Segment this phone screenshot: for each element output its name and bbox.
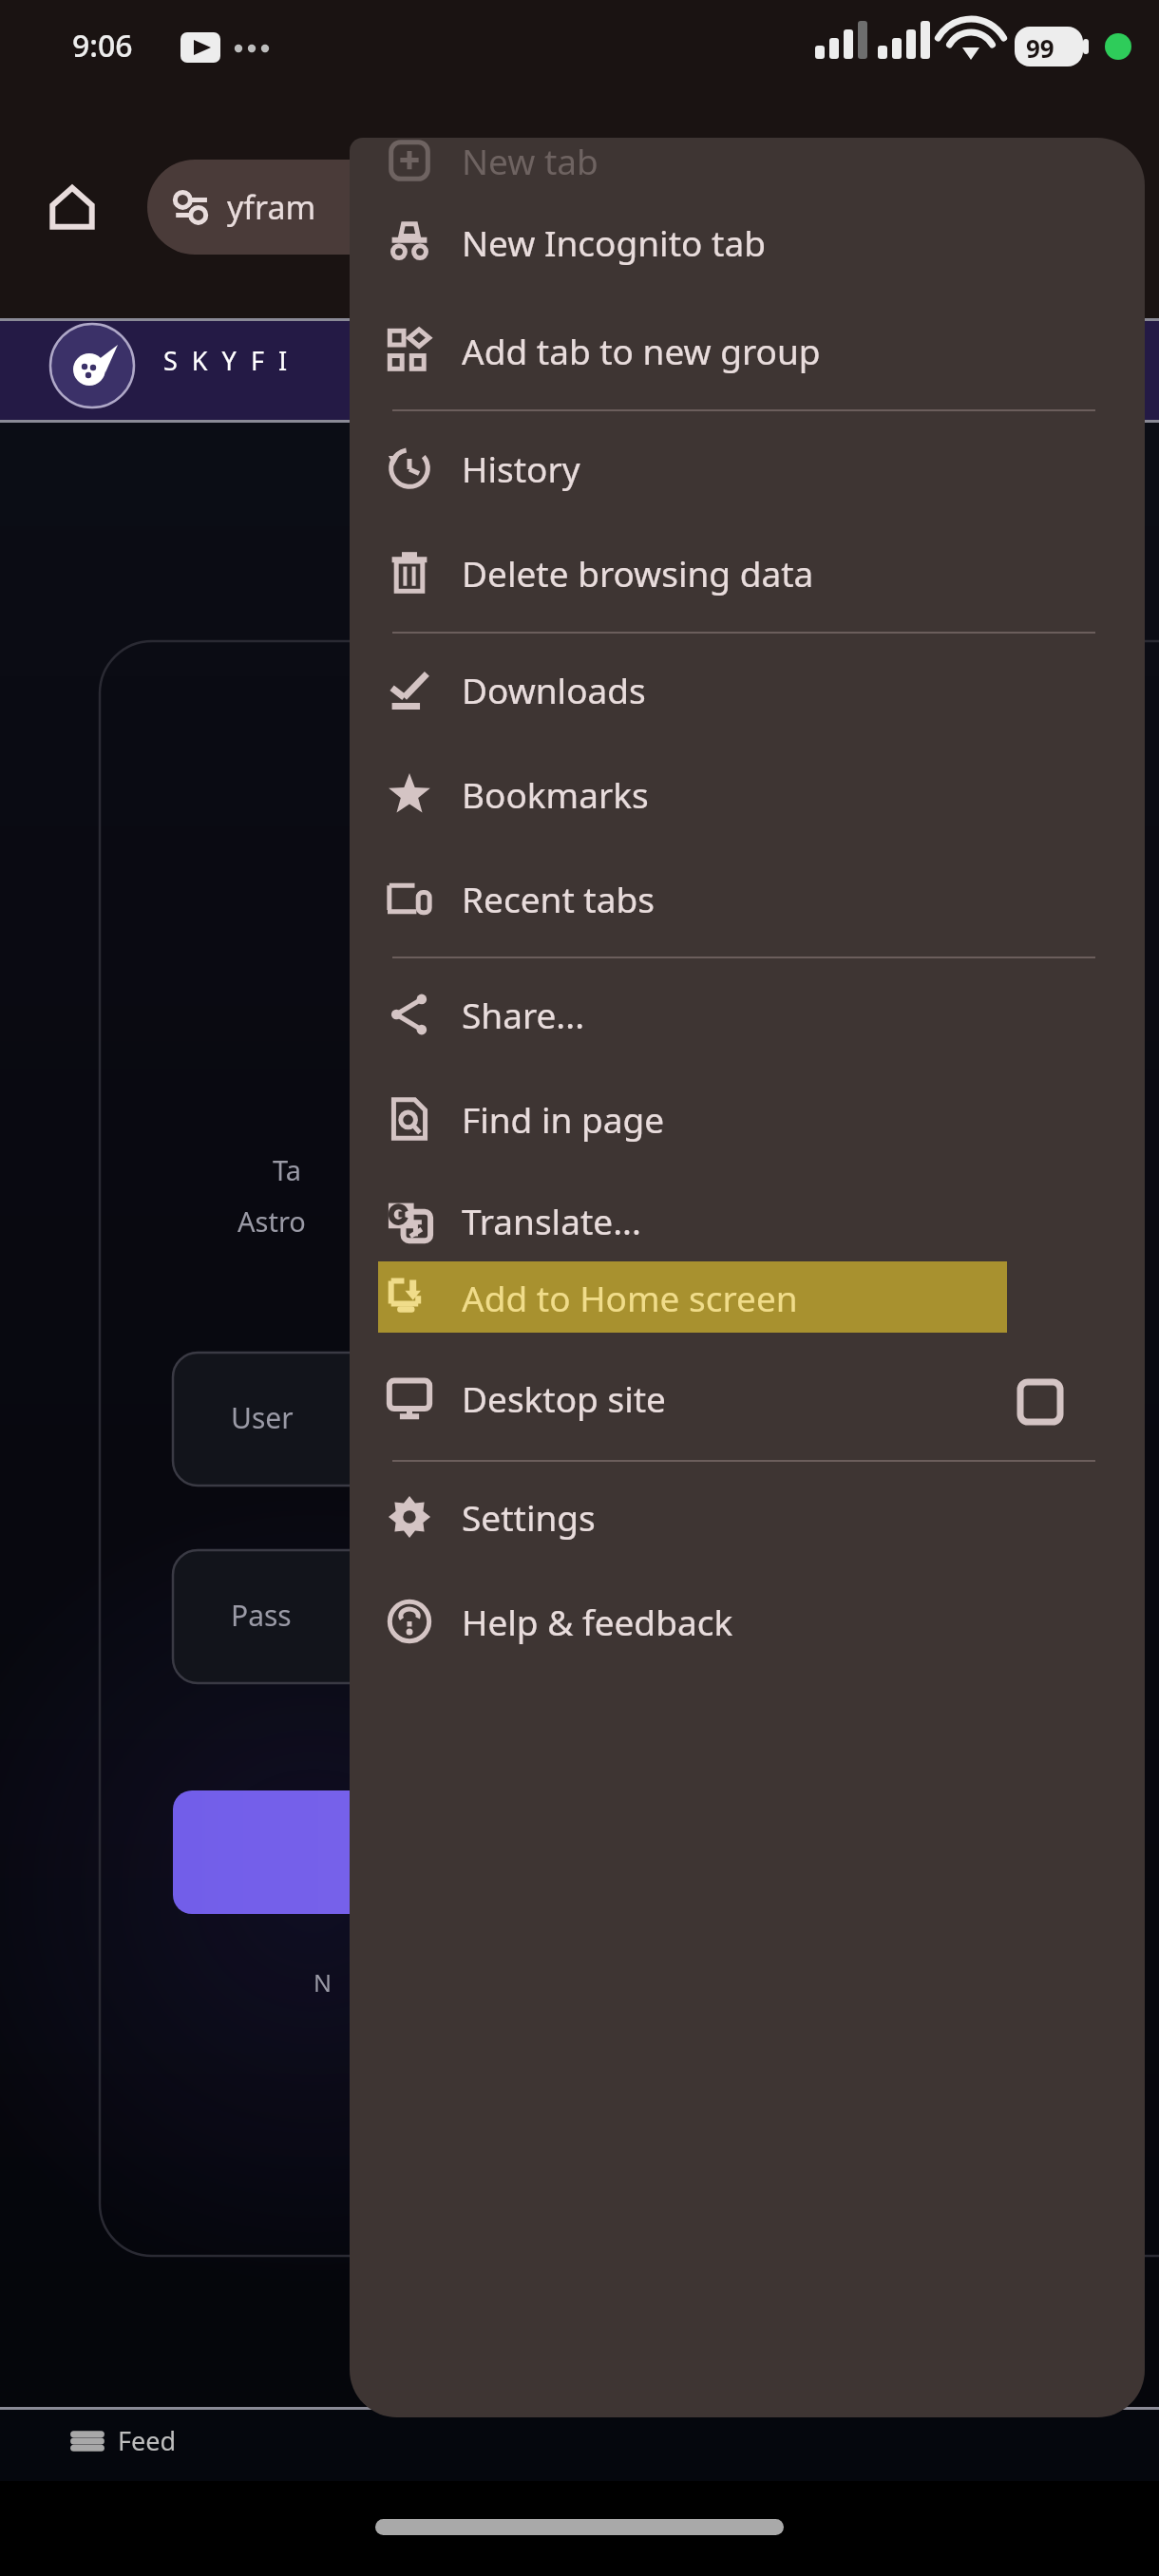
button[interactable] <box>378 1261 1007 1333</box>
staticText: Desktop site <box>462 1374 666 1422</box>
staticText: 9:06 <box>72 25 133 66</box>
button[interactable]: Add tab to new group <box>350 305 1145 395</box>
staticText: yfram <box>227 185 316 229</box>
button[interactable]: Delete browsing data <box>350 527 1145 617</box>
staticText: Pass <box>231 1596 292 1635</box>
staticText: Ta <box>273 1151 302 1188</box>
staticText: Recent tabs <box>462 875 655 922</box>
button[interactable]: Bookmarks <box>350 748 1145 839</box>
button[interactable]: Translate... <box>350 1175 1145 1265</box>
staticText: New Incognito tab <box>462 218 766 266</box>
button[interactable]: Help & feedback <box>350 1576 1145 1666</box>
staticText: Help & feedback <box>462 1598 733 1645</box>
staticText: User <box>231 1398 294 1437</box>
button[interactable]: New tab <box>350 138 1145 205</box>
button[interactable]: Recent tabs <box>350 853 1145 943</box>
staticText: Add to Home screen <box>462 1274 798 1321</box>
staticText: Add tab to new group <box>462 327 821 374</box>
staticText: History <box>462 445 580 492</box>
button[interactable]: New Incognito tab <box>350 197 1145 287</box>
button[interactable]: Find in page <box>350 1073 1145 1164</box>
button[interactable]: Desktop site <box>350 1353 1145 1443</box>
staticText: S K Y F I <box>163 343 292 378</box>
staticText: Translate... <box>462 1197 641 1244</box>
staticText: Share... <box>462 991 585 1038</box>
staticText: Astro <box>237 1203 306 1240</box>
button[interactable]: Feed <box>70 2423 177 2458</box>
staticText: Settings <box>462 1493 596 1541</box>
button[interactable]: Home <box>42 177 103 237</box>
button[interactable]: History <box>350 423 1145 513</box>
button[interactable]: yfram <box>147 160 461 255</box>
staticText: Find in page <box>462 1095 665 1143</box>
staticText: Downloads <box>462 666 646 713</box>
button[interactable]: Settings <box>350 1471 1145 1562</box>
staticText: Bookmarks <box>462 770 649 818</box>
staticText: Feed <box>118 2423 177 2458</box>
staticText: Delete browsing data <box>462 549 814 597</box>
staticText: 99 <box>1026 31 1054 65</box>
staticText: N <box>313 1966 332 1998</box>
button[interactable]: Share... <box>350 969 1145 1059</box>
staticText: New tab <box>462 138 598 184</box>
button[interactable]: Downloads <box>350 644 1145 734</box>
